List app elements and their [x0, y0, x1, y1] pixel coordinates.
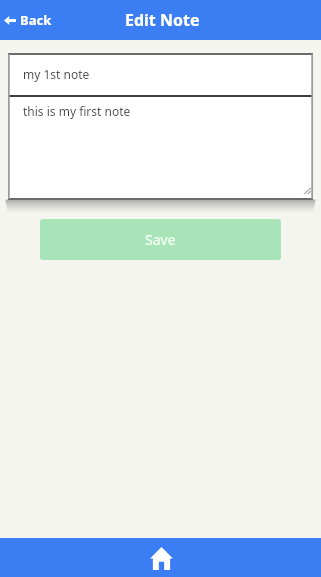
button[interactable]: Home	[142, 539, 180, 577]
staticText: Edit Note	[125, 9, 200, 31]
button[interactable]: Save	[40, 219, 281, 260]
button[interactable]: this is my first note	[8, 97, 313, 200]
staticText: this is my first note	[23, 103, 131, 119]
staticText: Save	[145, 230, 176, 249]
button[interactable]: my 1st note	[8, 53, 313, 95]
staticText: my 1st note	[23, 66, 90, 82]
button[interactable]: Back	[0, 5, 60, 35]
staticText: Back	[20, 11, 52, 29]
